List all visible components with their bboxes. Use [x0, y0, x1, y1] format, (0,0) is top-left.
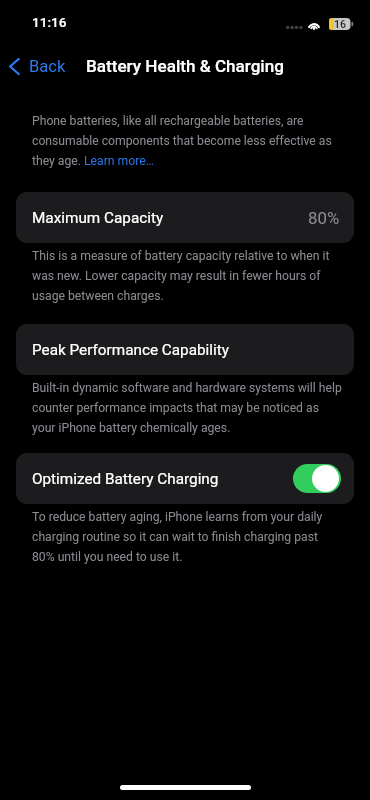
staticText: Optimized Battery Charging	[32, 470, 219, 488]
staticText: Back	[29, 57, 66, 76]
staticText: This is a measure of battery capacity re…	[32, 249, 343, 303]
staticText: 11:16	[32, 14, 67, 30]
button[interactable]: Maximum Capacity	[16, 192, 354, 243]
button[interactable]: Learn more	[82, 152, 154, 168]
button[interactable]: Back	[0, 52, 74, 81]
staticText: Maximum Capacity	[32, 209, 164, 227]
staticText: To reduce battery aging, iPhone learns f…	[32, 510, 343, 564]
staticText: Built-in dynamic software and hardware s…	[32, 381, 343, 435]
button[interactable]: Optimized Battery Charging toggle	[293, 464, 341, 493]
button[interactable]: Optimized Battery Charging	[16, 453, 354, 504]
staticText: 16	[334, 18, 347, 30]
staticText: 80%	[308, 208, 340, 228]
staticText: Peak Performance Capability	[32, 341, 229, 359]
button[interactable]: Peak Performance Capability	[16, 324, 354, 375]
staticText: Battery Health & Charging	[86, 56, 284, 76]
staticText: Phone batteries, like all rechargeable b…	[32, 114, 343, 168]
